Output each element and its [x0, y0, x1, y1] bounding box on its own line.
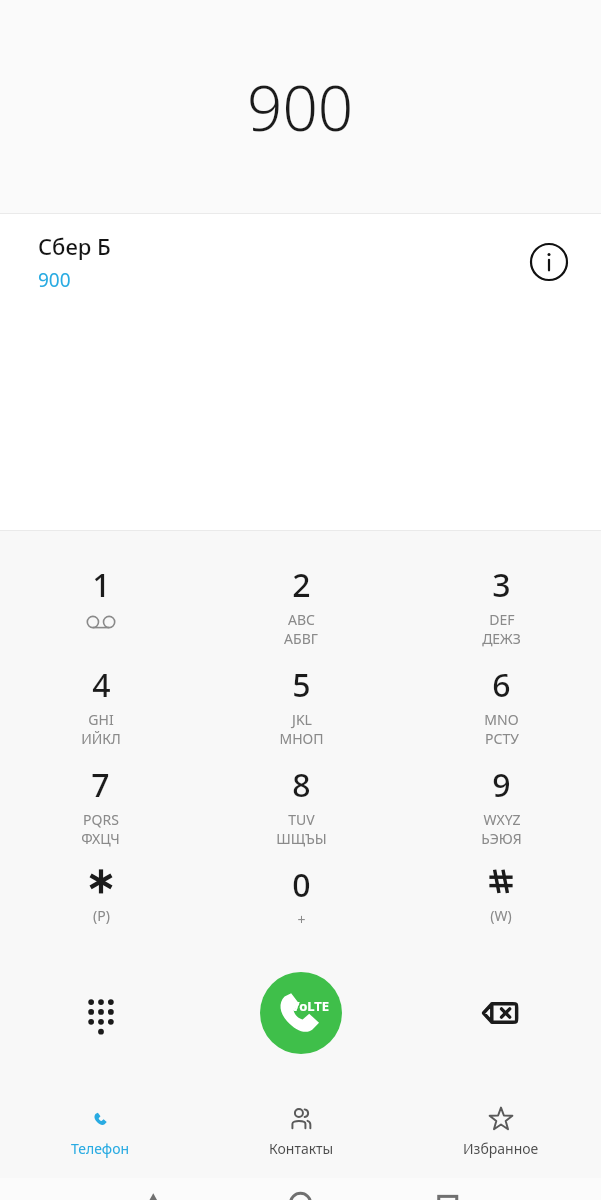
staticText: 900 [247, 65, 354, 149]
staticText: ШЩЪЫ [276, 829, 327, 848]
staticText: + [297, 910, 306, 929]
staticText: 0 [292, 863, 311, 907]
button[interactable]: Hide keypad [68, 980, 134, 1046]
staticText: MNO [484, 710, 519, 729]
staticText: ABC [288, 610, 315, 629]
staticText: 2 [292, 563, 311, 607]
staticText: Сбер Б [38, 231, 111, 261]
staticText: МНОП [279, 729, 324, 748]
button[interactable]: (W) [401, 855, 601, 955]
staticText: 7 [91, 763, 110, 807]
staticText: (P) [93, 906, 110, 925]
staticText: 5 [292, 663, 311, 707]
staticText: 8 [292, 763, 311, 807]
staticText: 6 [492, 663, 511, 707]
button[interactable]: 6 [401, 655, 601, 755]
button[interactable]: 0 [201, 855, 401, 955]
button[interactable]: 4 [0, 655, 201, 755]
staticText: ИЙКЛ [81, 729, 121, 748]
staticText: 9 [492, 763, 511, 807]
staticText: Телефон [71, 1139, 130, 1158]
staticText: GHI [88, 710, 114, 729]
staticText: 4 [92, 663, 111, 707]
button[interactable]: 7 [0, 755, 201, 855]
button[interactable]: Избранное [401, 1086, 601, 1178]
staticText: Контакты [269, 1139, 334, 1158]
button[interactable]: 5 [201, 655, 401, 755]
staticText: ЬЭЮЯ [481, 829, 522, 848]
button[interactable]: 9 [401, 755, 601, 855]
button[interactable]: Телефон [0, 1086, 201, 1178]
button[interactable]: Contact details [523, 236, 575, 288]
staticText: VoLTE [291, 997, 330, 1015]
button[interactable]: 3 [401, 555, 601, 655]
button[interactable]: Backspace [468, 980, 534, 1046]
button[interactable]: Контакты [201, 1086, 401, 1178]
staticText: Избранное [463, 1139, 539, 1158]
button[interactable]: 1 [0, 555, 201, 655]
staticText: DEF [489, 610, 515, 629]
staticText: РСТУ [485, 729, 519, 748]
staticText: ФХЦЧ [81, 829, 120, 848]
button[interactable]: 2 [201, 555, 401, 655]
staticText: PQRS [83, 810, 119, 829]
staticText: 1 [92, 563, 111, 607]
staticText: 900 [38, 267, 71, 293]
staticText: ДЕЖЗ [482, 629, 521, 648]
staticText: (W) [490, 906, 512, 925]
staticText: JKL [292, 710, 312, 729]
button[interactable]: (P) [0, 855, 201, 955]
staticText: WXYZ [483, 810, 521, 829]
button[interactable]: Сбер Б [0, 214, 601, 310]
button[interactable]: 8 [201, 755, 401, 855]
button[interactable]: Call [260, 972, 342, 1054]
staticText: TUV [288, 810, 315, 829]
staticText: 3 [492, 563, 511, 607]
staticText: АБВГ [284, 629, 318, 648]
